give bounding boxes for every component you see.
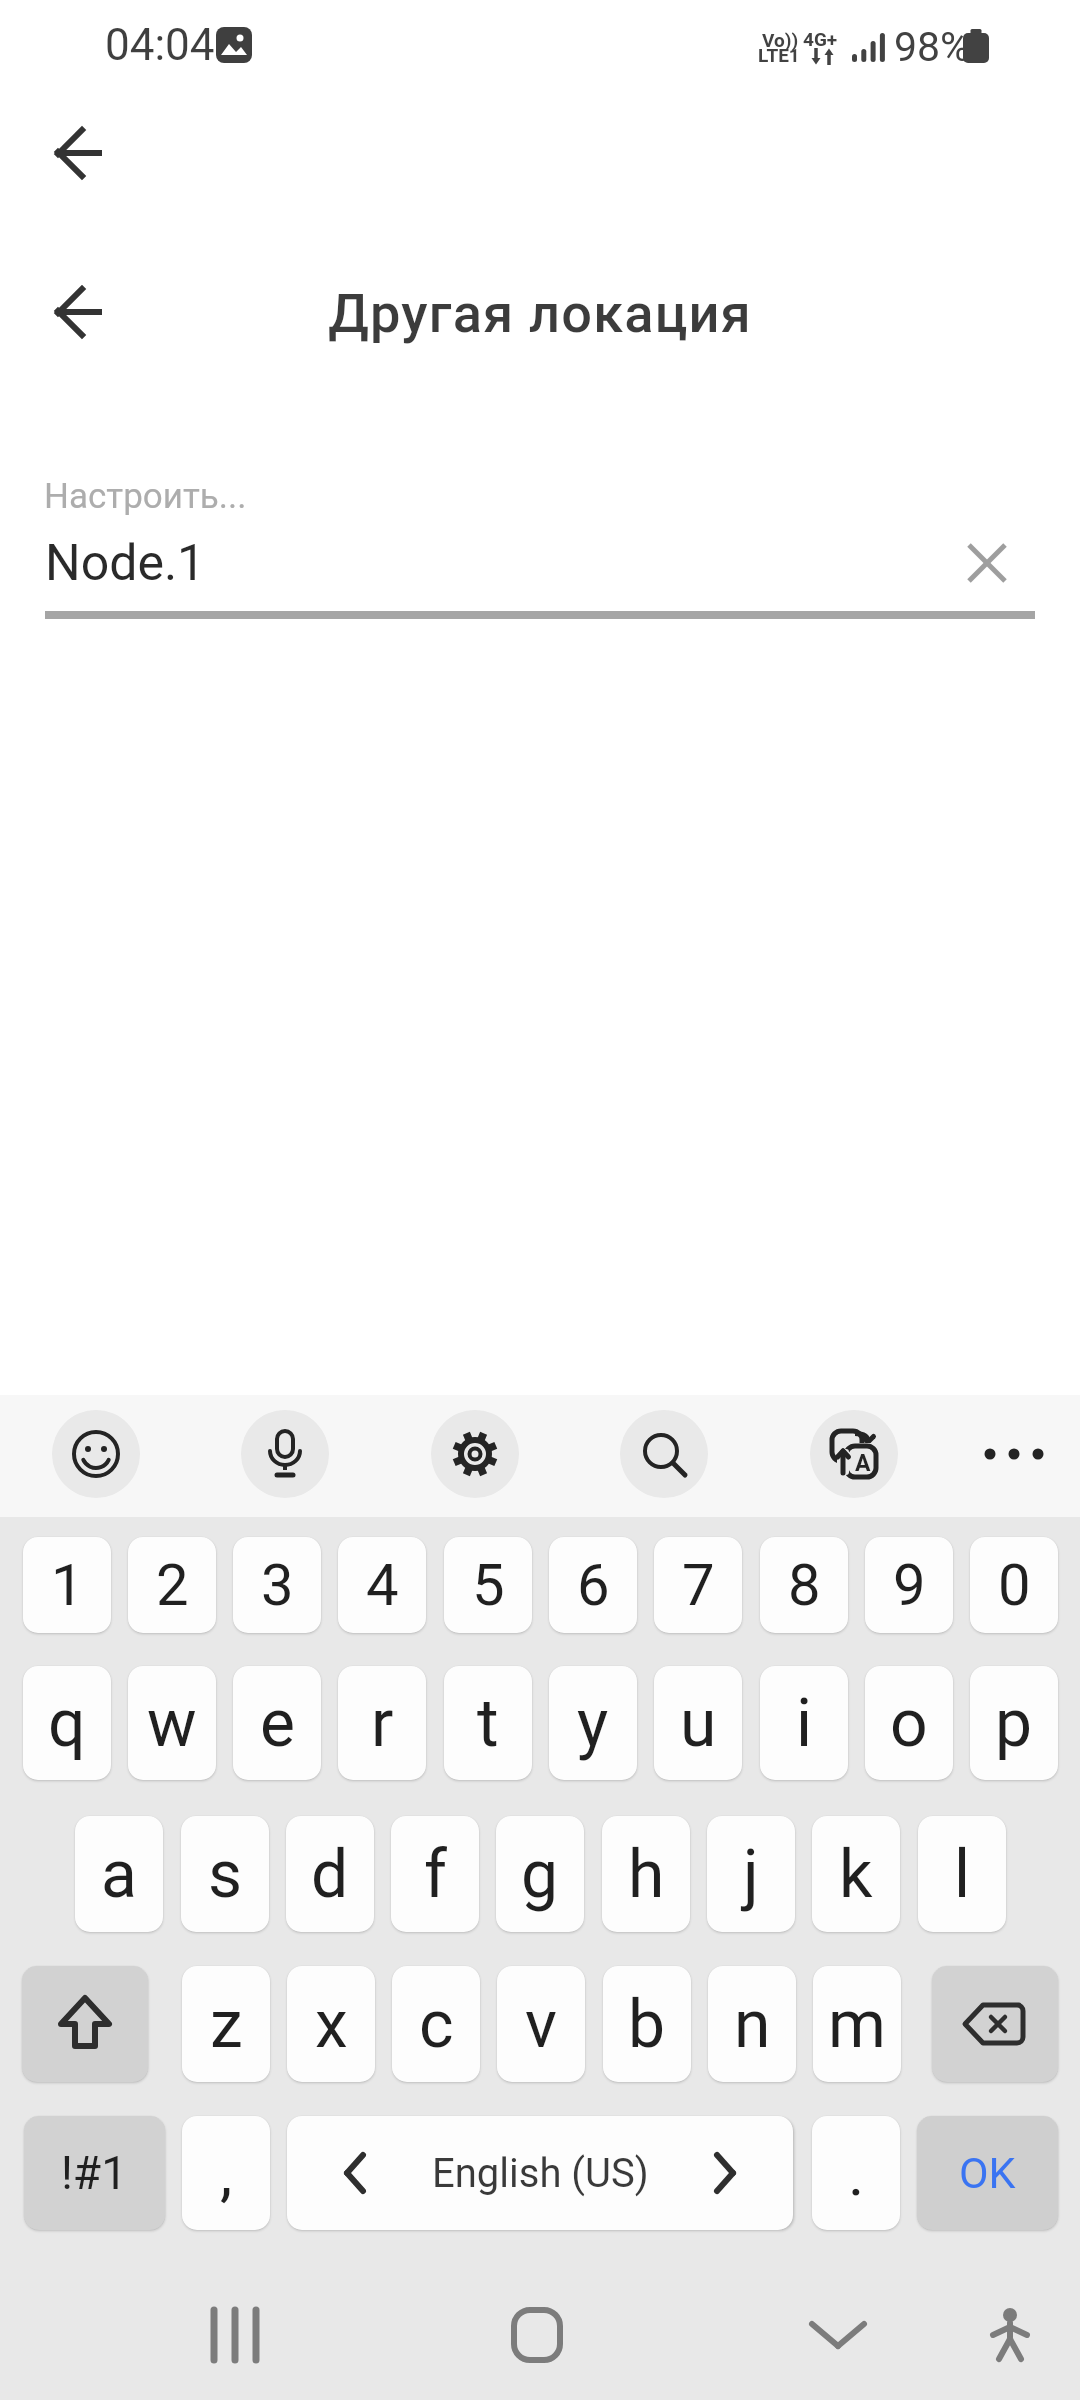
button[interactable]: s [181, 1816, 269, 1932]
staticText: l [954, 1836, 971, 1913]
button[interactable]: 7 [654, 1537, 742, 1633]
button[interactable] [37, 110, 123, 196]
staticText: !#1 [61, 2146, 128, 2200]
button[interactable]: n [708, 1966, 796, 2082]
staticText: LTE1 [758, 44, 800, 66]
button[interactable]: k [812, 1816, 900, 1932]
button[interactable]: c [392, 1966, 480, 2082]
button[interactable]: e [233, 1666, 321, 1780]
button[interactable]: d [286, 1816, 374, 1932]
button[interactable]: p [970, 1666, 1058, 1780]
button[interactable]: i [760, 1666, 848, 1780]
staticText: 1 [51, 1551, 84, 1619]
button[interactable]: j [707, 1816, 795, 1932]
staticText: d [311, 1836, 349, 1913]
button[interactable]: OK [917, 2116, 1058, 2230]
button[interactable]: w [128, 1666, 216, 1780]
button[interactable]: x [287, 1966, 375, 2082]
button[interactable] [431, 1410, 519, 1498]
button[interactable]: h [602, 1816, 690, 1932]
button[interactable]: 2 [128, 1537, 216, 1633]
button[interactable]: , [182, 2116, 270, 2230]
button[interactable]: r [338, 1666, 426, 1780]
staticText: w [147, 1685, 197, 1762]
staticText: p [995, 1685, 1033, 1762]
staticText: h [628, 1836, 665, 1913]
staticText: q [48, 1685, 86, 1762]
button[interactable]: 5 [444, 1537, 532, 1633]
staticText: r [371, 1685, 394, 1762]
staticText: Node.1 [45, 534, 206, 593]
button[interactable] [961, 537, 1013, 589]
staticText: j [743, 1836, 759, 1913]
staticText: t [477, 1685, 499, 1762]
staticText: 4 [366, 1551, 399, 1619]
button[interactable] [241, 1410, 329, 1498]
button[interactable]: z [182, 1966, 270, 2082]
button[interactable]: b [603, 1966, 691, 2082]
staticText: 2 [156, 1551, 189, 1619]
button[interactable] [37, 269, 123, 355]
staticText: 0 [998, 1551, 1031, 1619]
button[interactable]: 1 [23, 1537, 111, 1633]
staticText: Vo)) [762, 29, 799, 51]
staticText: c [419, 1986, 454, 2063]
button[interactable]: l [918, 1816, 1006, 1932]
button[interactable] [487, 2285, 587, 2385]
staticText: . [848, 2137, 865, 2210]
staticText: 98% [894, 23, 971, 71]
staticText: e [260, 1685, 295, 1762]
staticText: z [210, 1986, 243, 2063]
staticText: s [208, 1836, 243, 1913]
staticText: 4G+ [803, 28, 838, 50]
staticText: English (US) [432, 2150, 649, 2197]
staticText: 04:04 [105, 19, 215, 71]
button[interactable] [185, 2285, 285, 2385]
staticText: 6 [577, 1551, 610, 1619]
staticText: n [734, 1986, 771, 2063]
button[interactable]: u [654, 1666, 742, 1780]
button[interactable]: 4 [338, 1537, 426, 1633]
staticText: 3 [261, 1551, 294, 1619]
staticText: 8 [788, 1551, 821, 1619]
button[interactable] [970, 1410, 1058, 1498]
button[interactable]: o [865, 1666, 953, 1780]
button[interactable] [788, 2285, 888, 2385]
button[interactable]: English (US) [287, 2116, 793, 2230]
button[interactable]: f [391, 1816, 479, 1932]
button[interactable] [22, 1966, 148, 2082]
staticText: u [680, 1685, 717, 1762]
button[interactable]: !#1 [24, 2116, 165, 2230]
staticText: Настроить... [44, 476, 247, 517]
button[interactable]: 8 [760, 1537, 848, 1633]
button[interactable]: g [496, 1816, 584, 1932]
button[interactable]: 9 [865, 1537, 953, 1633]
staticText: g [521, 1836, 559, 1913]
button[interactable]: v [497, 1966, 585, 2082]
staticText: OK [959, 2148, 1016, 2198]
button[interactable] [45, 468, 945, 619]
staticText: b [628, 1986, 666, 2063]
staticText: v [525, 1986, 557, 2063]
staticText: a [101, 1836, 137, 1913]
button[interactable] [620, 1410, 708, 1498]
button[interactable]: 3 [233, 1537, 321, 1633]
button[interactable] [932, 1966, 1058, 2082]
button[interactable]: 6 [549, 1537, 637, 1633]
staticText: A [855, 1450, 871, 1477]
button[interactable]: a [75, 1816, 163, 1932]
button[interactable] [52, 1410, 140, 1498]
staticText: x [315, 1986, 348, 2063]
button[interactable]: . [812, 2116, 900, 2230]
button[interactable]: A [810, 1410, 898, 1498]
staticText: m [828, 1986, 886, 2063]
button[interactable] [960, 2285, 1060, 2385]
button[interactable]: q [23, 1666, 111, 1780]
button[interactable]: y [549, 1666, 637, 1780]
staticText: 9 [893, 1551, 926, 1619]
staticText: 5 [472, 1551, 505, 1619]
button[interactable]: 0 [970, 1537, 1058, 1633]
staticText: , [220, 2137, 233, 2210]
button[interactable]: m [813, 1966, 901, 2082]
button[interactable]: t [444, 1666, 532, 1780]
